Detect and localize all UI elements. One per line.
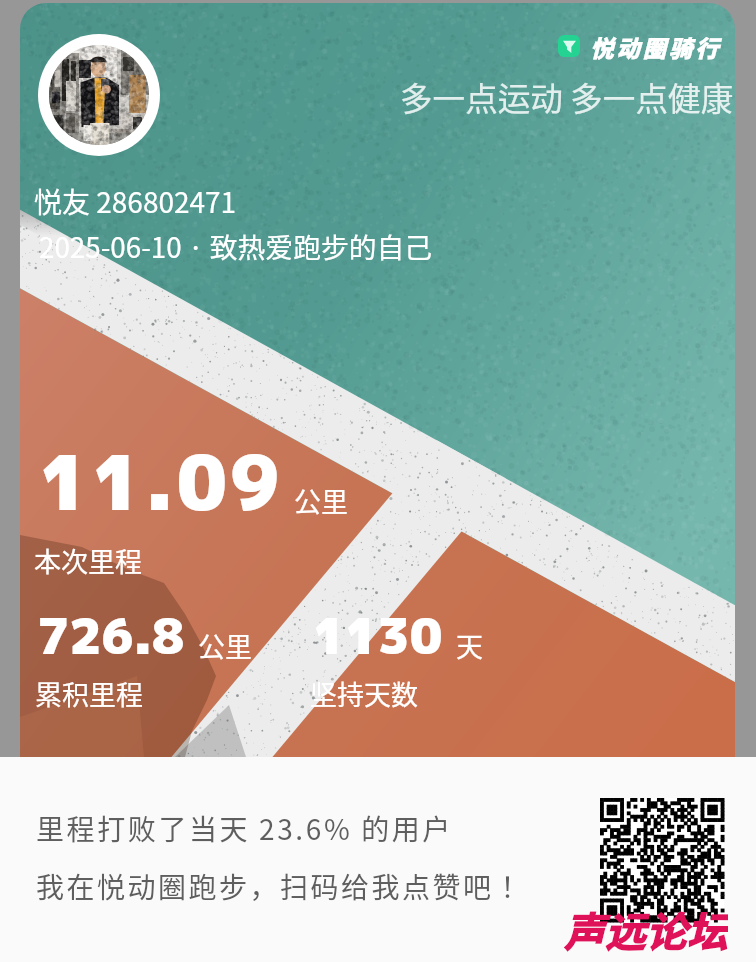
staticText: 公里 <box>294 481 348 520</box>
staticText: 726.8 <box>37 601 184 670</box>
staticText: 11.09 <box>39 428 283 534</box>
staticText: 累积里程 <box>35 674 143 713</box>
staticText: 1130 <box>313 601 443 670</box>
button[interactable]: User avatar <box>49 45 149 145</box>
staticText: 里程打败了当天 23.6% 的用户 <box>36 808 453 849</box>
staticText: 多一点运动 多一点健康 <box>400 73 734 120</box>
staticText: 本次里程 <box>34 541 142 580</box>
button[interactable]: User avatar <box>20 3 735 757</box>
staticText: 公里 <box>198 626 252 665</box>
staticText: 2025-06-10 · 致热爱跑步的自己 <box>39 226 433 266</box>
staticText: 声远论坛 <box>564 899 728 953</box>
staticText: 悦动圈骑行 <box>589 30 720 63</box>
staticText: 天 <box>456 626 483 665</box>
staticText: 坚持天数 <box>310 674 418 713</box>
staticText: 我在悦动圈跑步，扫码给我点赞吧！ <box>36 866 525 907</box>
staticText: 悦友 286802471 <box>34 181 237 222</box>
button[interactable]: 悦动圈骑行 <box>558 29 720 62</box>
